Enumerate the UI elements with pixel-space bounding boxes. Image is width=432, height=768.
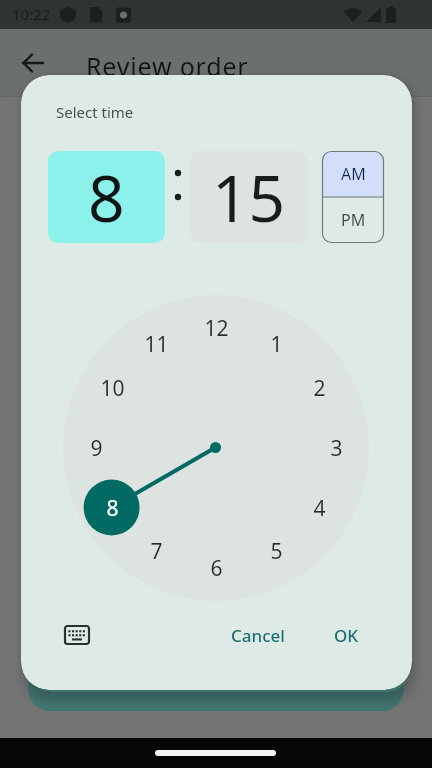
staticText: Cancel <box>231 624 285 646</box>
staticText: 1 <box>270 330 283 359</box>
staticText: 6 <box>210 554 223 583</box>
staticText: OK <box>334 624 359 646</box>
staticText: 4 <box>313 494 326 523</box>
staticText: 3 <box>330 434 343 463</box>
staticText: 2 <box>313 374 326 403</box>
staticText: 10 <box>100 374 125 403</box>
staticText: 10:22 <box>12 4 51 24</box>
staticText: 8 <box>106 494 119 523</box>
staticText: Select time <box>56 102 134 122</box>
staticText: 12 <box>204 314 229 343</box>
staticText: PM <box>341 209 366 231</box>
staticText: Review order <box>86 49 249 77</box>
staticText: 7 <box>150 537 163 566</box>
staticText: 5 <box>270 537 283 566</box>
staticText: 8 <box>88 154 125 241</box>
staticText: AM <box>341 163 366 185</box>
staticText: 11 <box>144 330 169 359</box>
staticText: 15 <box>212 154 286 241</box>
staticText: 9 <box>90 434 103 463</box>
